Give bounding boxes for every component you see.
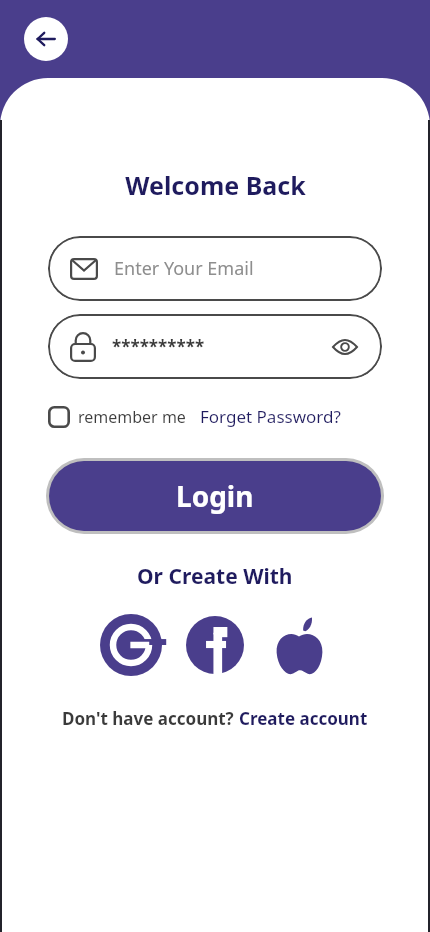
button[interactable]: Login <box>49 461 381 531</box>
staticText: Login <box>176 477 254 515</box>
button[interactable]: remember me <box>48 406 186 428</box>
button[interactable]: Forget Password? <box>200 405 341 428</box>
staticText: Don't have account? <box>62 707 239 730</box>
button[interactable]: Sign in with Facebook <box>183 613 247 677</box>
button[interactable]: Show password <box>330 332 360 362</box>
button[interactable]: Sign in with Apple <box>267 613 331 677</box>
staticText: Enter Your Email <box>114 256 254 281</box>
button[interactable]: Back <box>24 17 68 61</box>
staticText: Create account <box>239 707 368 730</box>
button[interactable]: Sign in with Google <box>99 613 163 677</box>
staticText: Welcome Back <box>125 168 306 202</box>
staticText: ********** <box>112 335 205 358</box>
staticText: remember me <box>78 406 186 428</box>
button[interactable]: ********** <box>48 314 382 379</box>
button[interactable]: Enter Your Email <box>48 236 382 301</box>
staticText: Forget Password? <box>200 405 341 428</box>
staticText: Or Create With <box>137 562 293 591</box>
button[interactable]: Don't have account? <box>62 707 368 730</box>
